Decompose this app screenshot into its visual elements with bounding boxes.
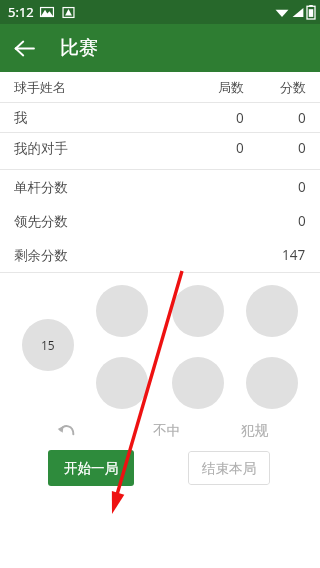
staticText: 0 <box>298 139 306 157</box>
staticText: 单杆分数 <box>14 179 68 196</box>
staticText: 剩余分数 <box>14 247 68 264</box>
staticText: 结束本局 <box>202 460 256 477</box>
staticText: 球手姓名 <box>14 79 66 95</box>
staticText: 犯规 <box>241 422 268 439</box>
button[interactable]: Ball <box>96 285 148 337</box>
button[interactable]: Ball <box>172 285 224 337</box>
button[interactable]: Ball <box>96 357 148 409</box>
button[interactable]: 单杆分数 <box>0 170 320 204</box>
button[interactable]: 不中 <box>136 414 196 446</box>
staticText: 0 <box>236 139 244 157</box>
button[interactable]: 犯规 <box>224 414 284 446</box>
staticText: 分数 <box>280 79 306 95</box>
button[interactable]: 我的对手 <box>0 133 320 163</box>
staticText: 比赛 <box>60 36 98 60</box>
button[interactable]: 15 <box>22 319 74 371</box>
staticText: 我 <box>14 109 28 126</box>
button[interactable]: Back <box>4 28 44 68</box>
button[interactable]: 剩余分数 <box>0 238 320 272</box>
staticText: 0 <box>236 109 244 127</box>
button[interactable]: Ball <box>246 357 298 409</box>
button[interactable]: Ball <box>246 285 298 337</box>
staticText: 0 <box>298 109 306 127</box>
button[interactable]: Undo <box>44 414 88 446</box>
button[interactable]: 我 <box>0 103 320 132</box>
button[interactable]: 球手姓名 <box>0 72 320 102</box>
staticText: 开始一局 <box>64 460 118 477</box>
staticText: 不中 <box>153 422 180 439</box>
staticText: 15 <box>41 337 55 353</box>
button[interactable]: 领先分数 <box>0 204 320 238</box>
button[interactable]: 开始一局 <box>48 450 134 486</box>
staticText: 5:12 <box>8 3 34 21</box>
staticText: 147 <box>282 246 306 264</box>
staticText: 0 <box>298 212 306 230</box>
button[interactable]: 结束本局 <box>188 451 270 485</box>
staticText: 领先分数 <box>14 213 68 230</box>
staticText: 我的对手 <box>14 140 68 157</box>
staticText: 局数 <box>218 79 244 95</box>
button[interactable]: Ball <box>172 357 224 409</box>
staticText: 0 <box>298 178 306 196</box>
